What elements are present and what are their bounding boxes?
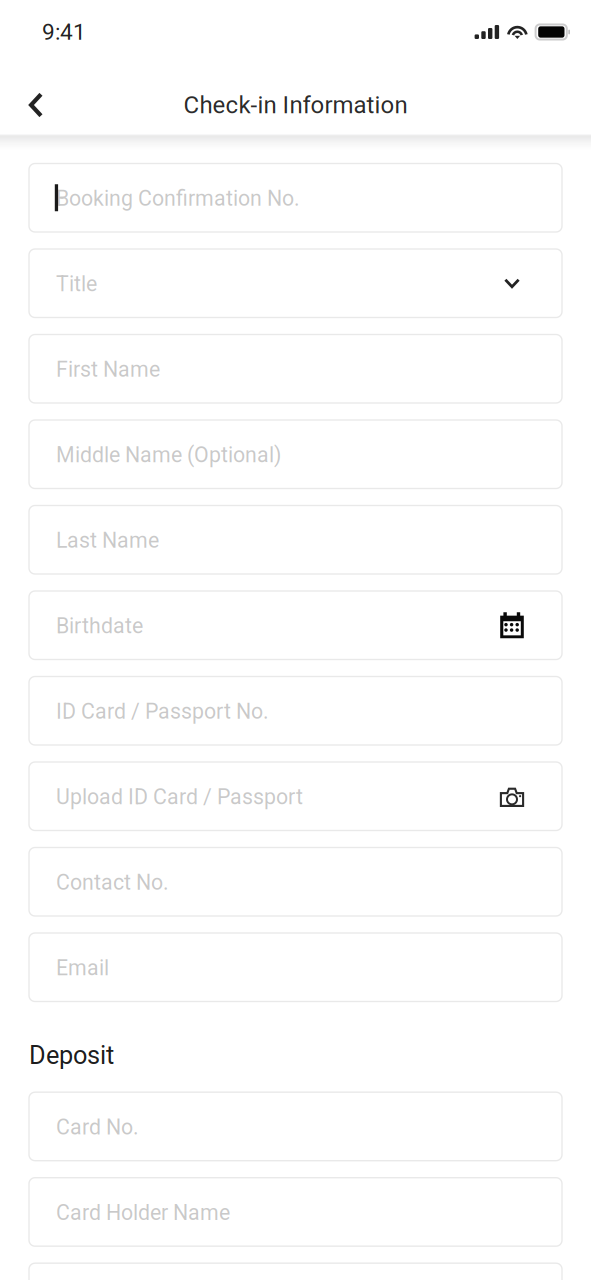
- staticText: Contact No.: [56, 870, 169, 895]
- staticText: Deposit: [29, 1040, 114, 1070]
- button[interactable]: Contact No.: [29, 847, 562, 916]
- button[interactable]: First Name: [29, 334, 562, 403]
- button[interactable]: Booking Confirmation No.: [29, 163, 562, 232]
- staticText: Card Holder Name: [56, 1200, 230, 1225]
- button[interactable]: Middle Name (Optional): [29, 420, 562, 488]
- button[interactable]: ID Card / Passport No.: [29, 676, 562, 745]
- staticText: Check-in Information: [183, 91, 407, 119]
- button[interactable]: Expiry Date: [29, 1263, 562, 1280]
- button[interactable]: Birthdate: [29, 591, 562, 659]
- staticText: Upload ID Card / Passport: [56, 784, 303, 809]
- staticText: Last Name: [56, 528, 159, 553]
- staticText: 9:41: [42, 19, 86, 45]
- staticText: Card No.: [56, 1115, 139, 1140]
- button[interactable]: Card Holder Name: [29, 1178, 562, 1246]
- button[interactable]: Title: [29, 249, 562, 317]
- button[interactable]: Upload ID Card / Passport: [29, 762, 562, 830]
- button[interactable]: Card No.: [29, 1092, 562, 1161]
- staticText: First Name: [56, 357, 160, 382]
- staticText: Title: [56, 271, 97, 296]
- staticText: Middle Name (Optional): [56, 442, 281, 467]
- staticText: Booking Confirmation No.: [56, 186, 300, 211]
- button[interactable]: Back: [11, 80, 61, 130]
- staticText: Birthdate: [56, 613, 143, 638]
- staticText: ID Card / Passport No.: [56, 699, 269, 724]
- button[interactable]: Last Name: [29, 505, 562, 574]
- button[interactable]: Email: [29, 933, 562, 1001]
- staticText: Email: [56, 955, 109, 980]
